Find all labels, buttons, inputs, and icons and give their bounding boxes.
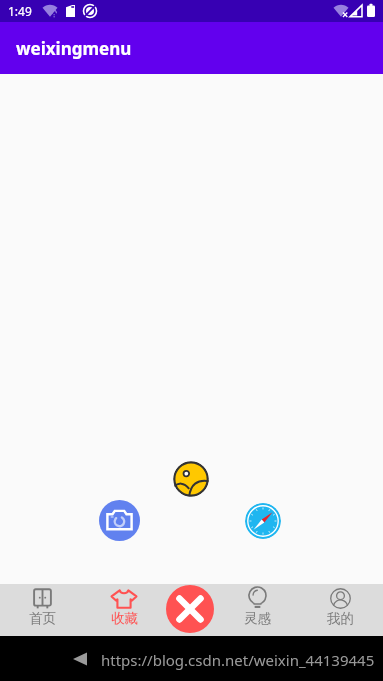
button[interactable]: 收藏 xyxy=(92,584,156,636)
button[interactable]: Camera xyxy=(99,500,140,541)
button[interactable]: Browser xyxy=(245,503,281,539)
button[interactable]: Album xyxy=(173,461,209,497)
button[interactable]: 我的 xyxy=(308,584,372,636)
other: Back xyxy=(73,651,87,667)
staticText: 我的 xyxy=(327,610,354,627)
button[interactable]: 灵感 xyxy=(225,584,289,636)
staticText: 首页 xyxy=(29,610,56,627)
staticText: 1:49 xyxy=(8,3,32,19)
button[interactable]: 首页 xyxy=(10,584,74,636)
staticText: https://blog.csdn.net/weixin_44139445 xyxy=(101,650,375,670)
staticText: weixingmenu xyxy=(16,37,132,60)
button[interactable]: Close menu xyxy=(166,585,214,633)
staticText: 灵感 xyxy=(244,610,271,627)
staticText: 收藏 xyxy=(111,610,138,627)
